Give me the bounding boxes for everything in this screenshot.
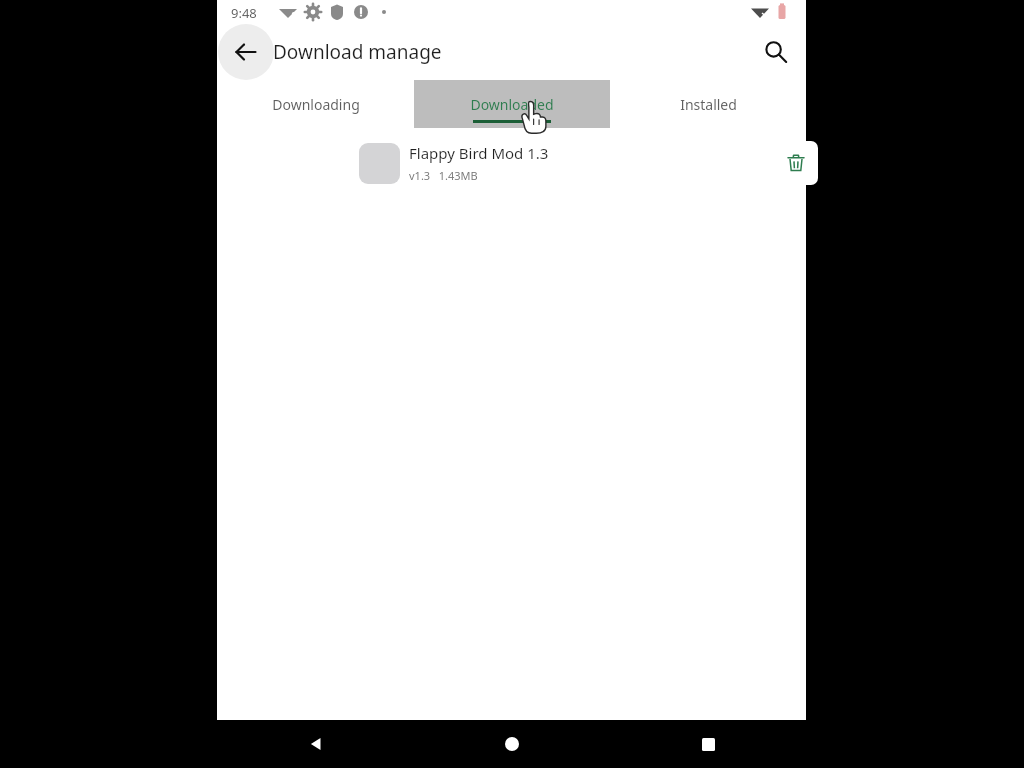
button[interactable]: Home	[414, 720, 610, 768]
staticText: Downloading	[272, 95, 360, 114]
button[interactable]: Recent apps	[610, 720, 806, 768]
staticText: Downloaded	[470, 95, 554, 114]
button[interactable]: Back	[218, 24, 274, 80]
button[interactable]: Installed	[610, 80, 806, 128]
staticText: Flappy Bird Mod 1.3	[409, 143, 549, 163]
button[interactable]: Flappy Bird Mod 1.3	[217, 128, 806, 198]
staticText: Installed	[680, 95, 737, 114]
button[interactable]: Back	[217, 720, 414, 768]
button[interactable]: Downloading	[217, 80, 414, 128]
staticText: 9:48	[231, 4, 257, 22]
button[interactable]: Search	[752, 28, 800, 76]
staticText: Download manage	[273, 39, 442, 65]
staticText: v1.3 1.43MB	[409, 168, 478, 183]
button[interactable]: Downloaded	[414, 80, 610, 128]
button[interactable]: Delete	[774, 141, 818, 185]
